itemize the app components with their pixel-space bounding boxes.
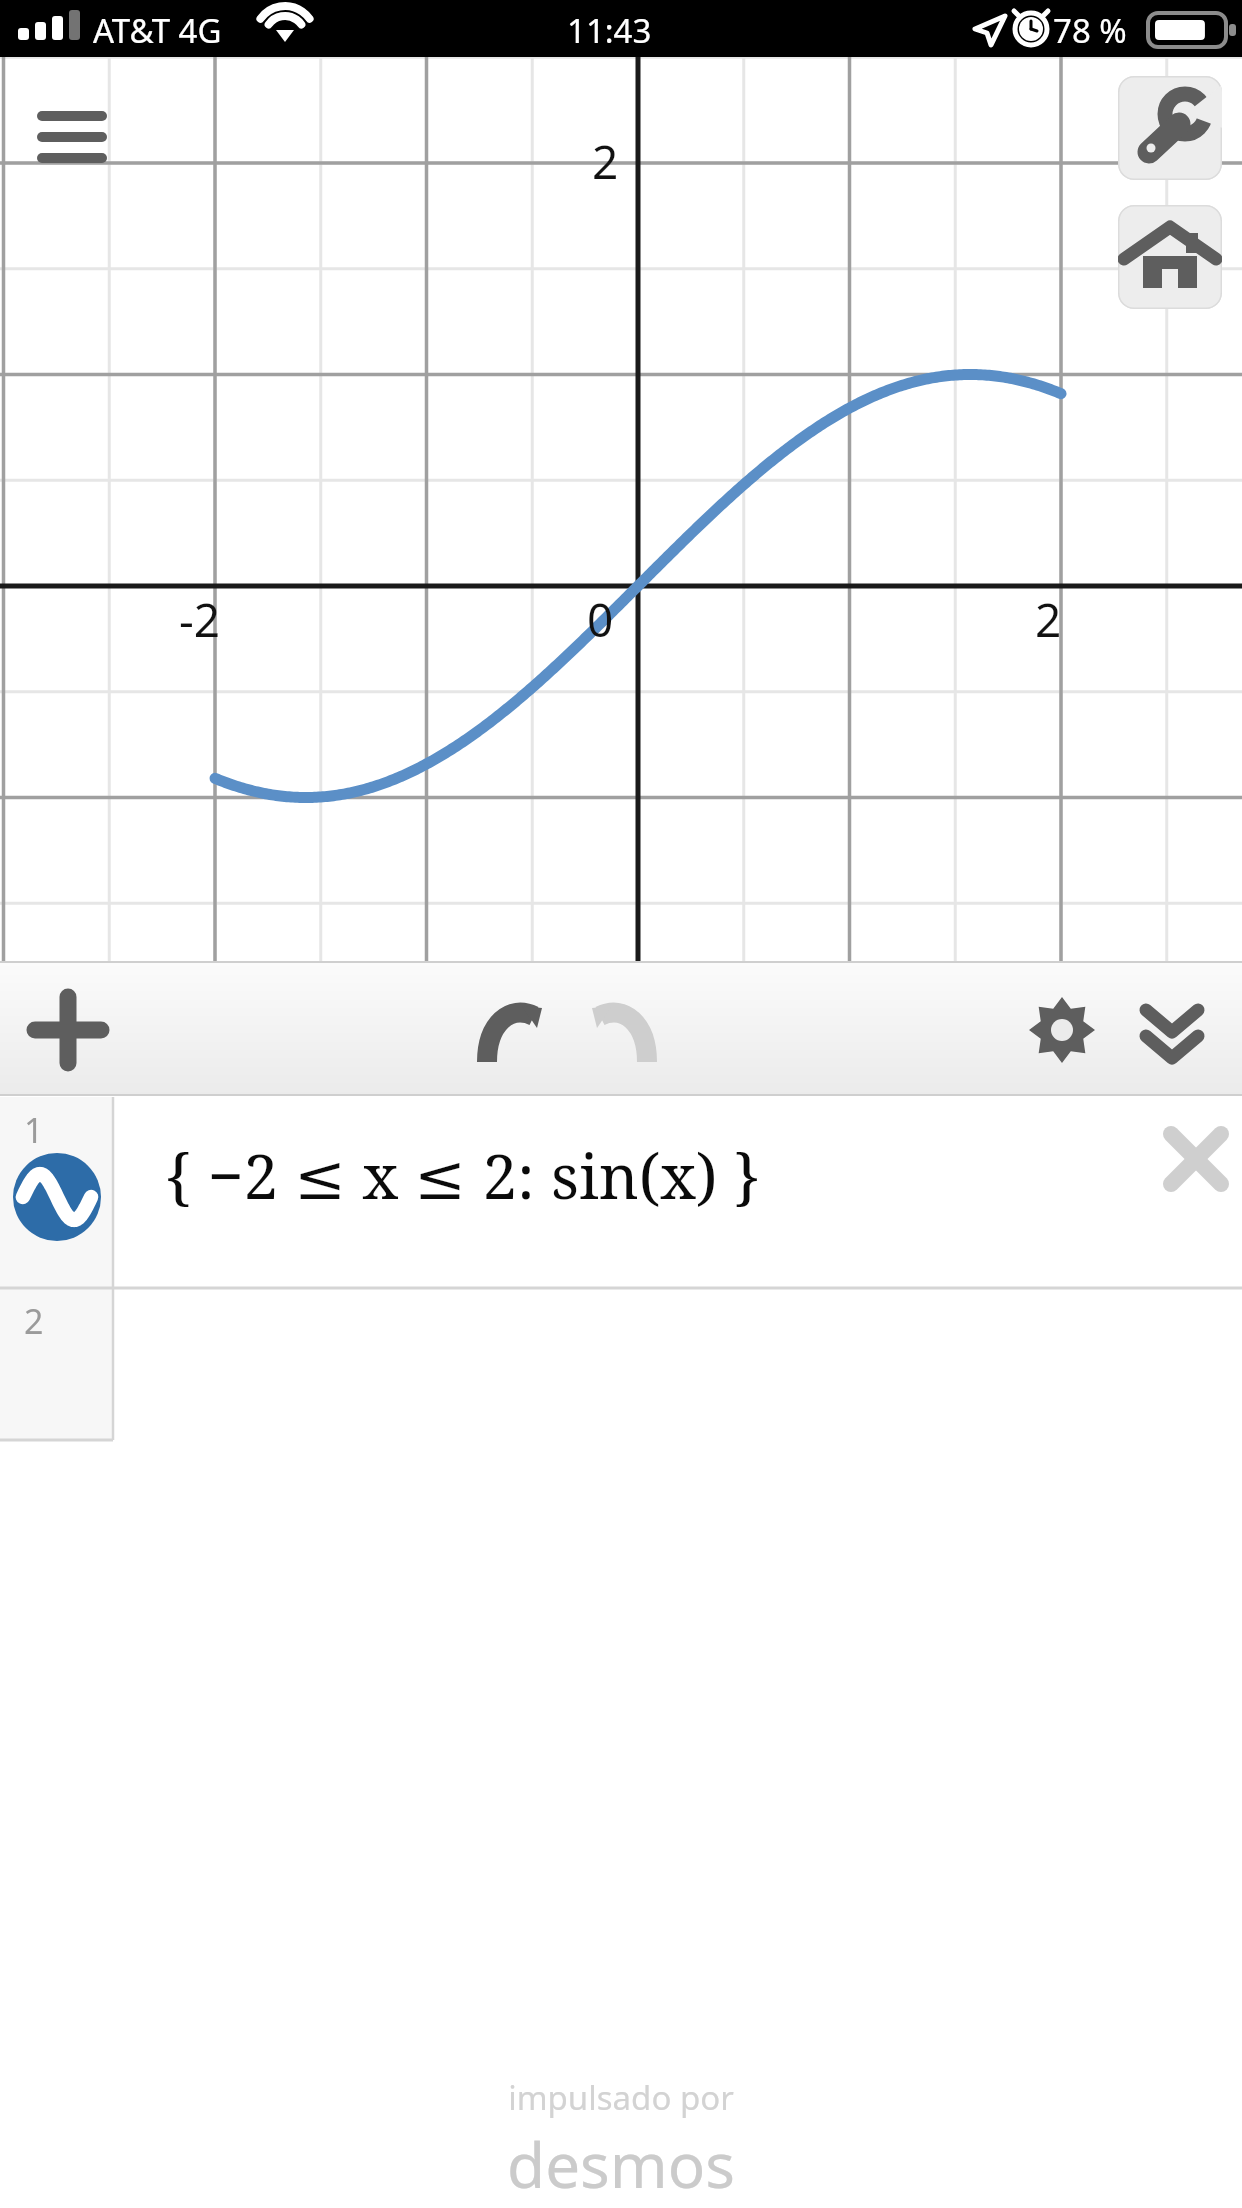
button[interactable]: Undo xyxy=(460,980,564,1080)
staticText: AT&T 4G xyxy=(93,8,222,53)
button[interactable]: Redo xyxy=(570,980,674,1080)
staticText: { −2 ≤ x ≤ 2: sin(x) } xyxy=(165,1133,761,1217)
button[interactable] xyxy=(0,1288,1242,1440)
staticText: 11:43 xyxy=(567,8,652,53)
staticText: 2 xyxy=(592,130,619,193)
staticText: -2 xyxy=(179,588,221,651)
staticText: desmos xyxy=(507,2122,735,2206)
button[interactable]: Home xyxy=(1118,205,1222,309)
button[interactable]: Settings tools xyxy=(1118,76,1222,180)
button[interactable]: Delete expression xyxy=(1152,1115,1240,1203)
button[interactable] xyxy=(0,1097,1242,1288)
staticText: impulsado por xyxy=(508,2075,734,2120)
button[interactable]: Add expression xyxy=(16,980,120,1080)
button[interactable]: Graph settings xyxy=(1010,980,1114,1080)
staticText: 2 xyxy=(1035,588,1062,651)
button[interactable]: Collapse keypad xyxy=(1120,980,1224,1080)
staticText: 78 % xyxy=(1053,8,1127,53)
button[interactable]: Toggle graph xyxy=(13,1153,101,1241)
button[interactable]: Menu xyxy=(20,87,124,187)
staticText: 2 xyxy=(24,1298,44,1344)
staticText: 1 xyxy=(24,1107,44,1153)
staticText: 0 xyxy=(587,588,614,651)
